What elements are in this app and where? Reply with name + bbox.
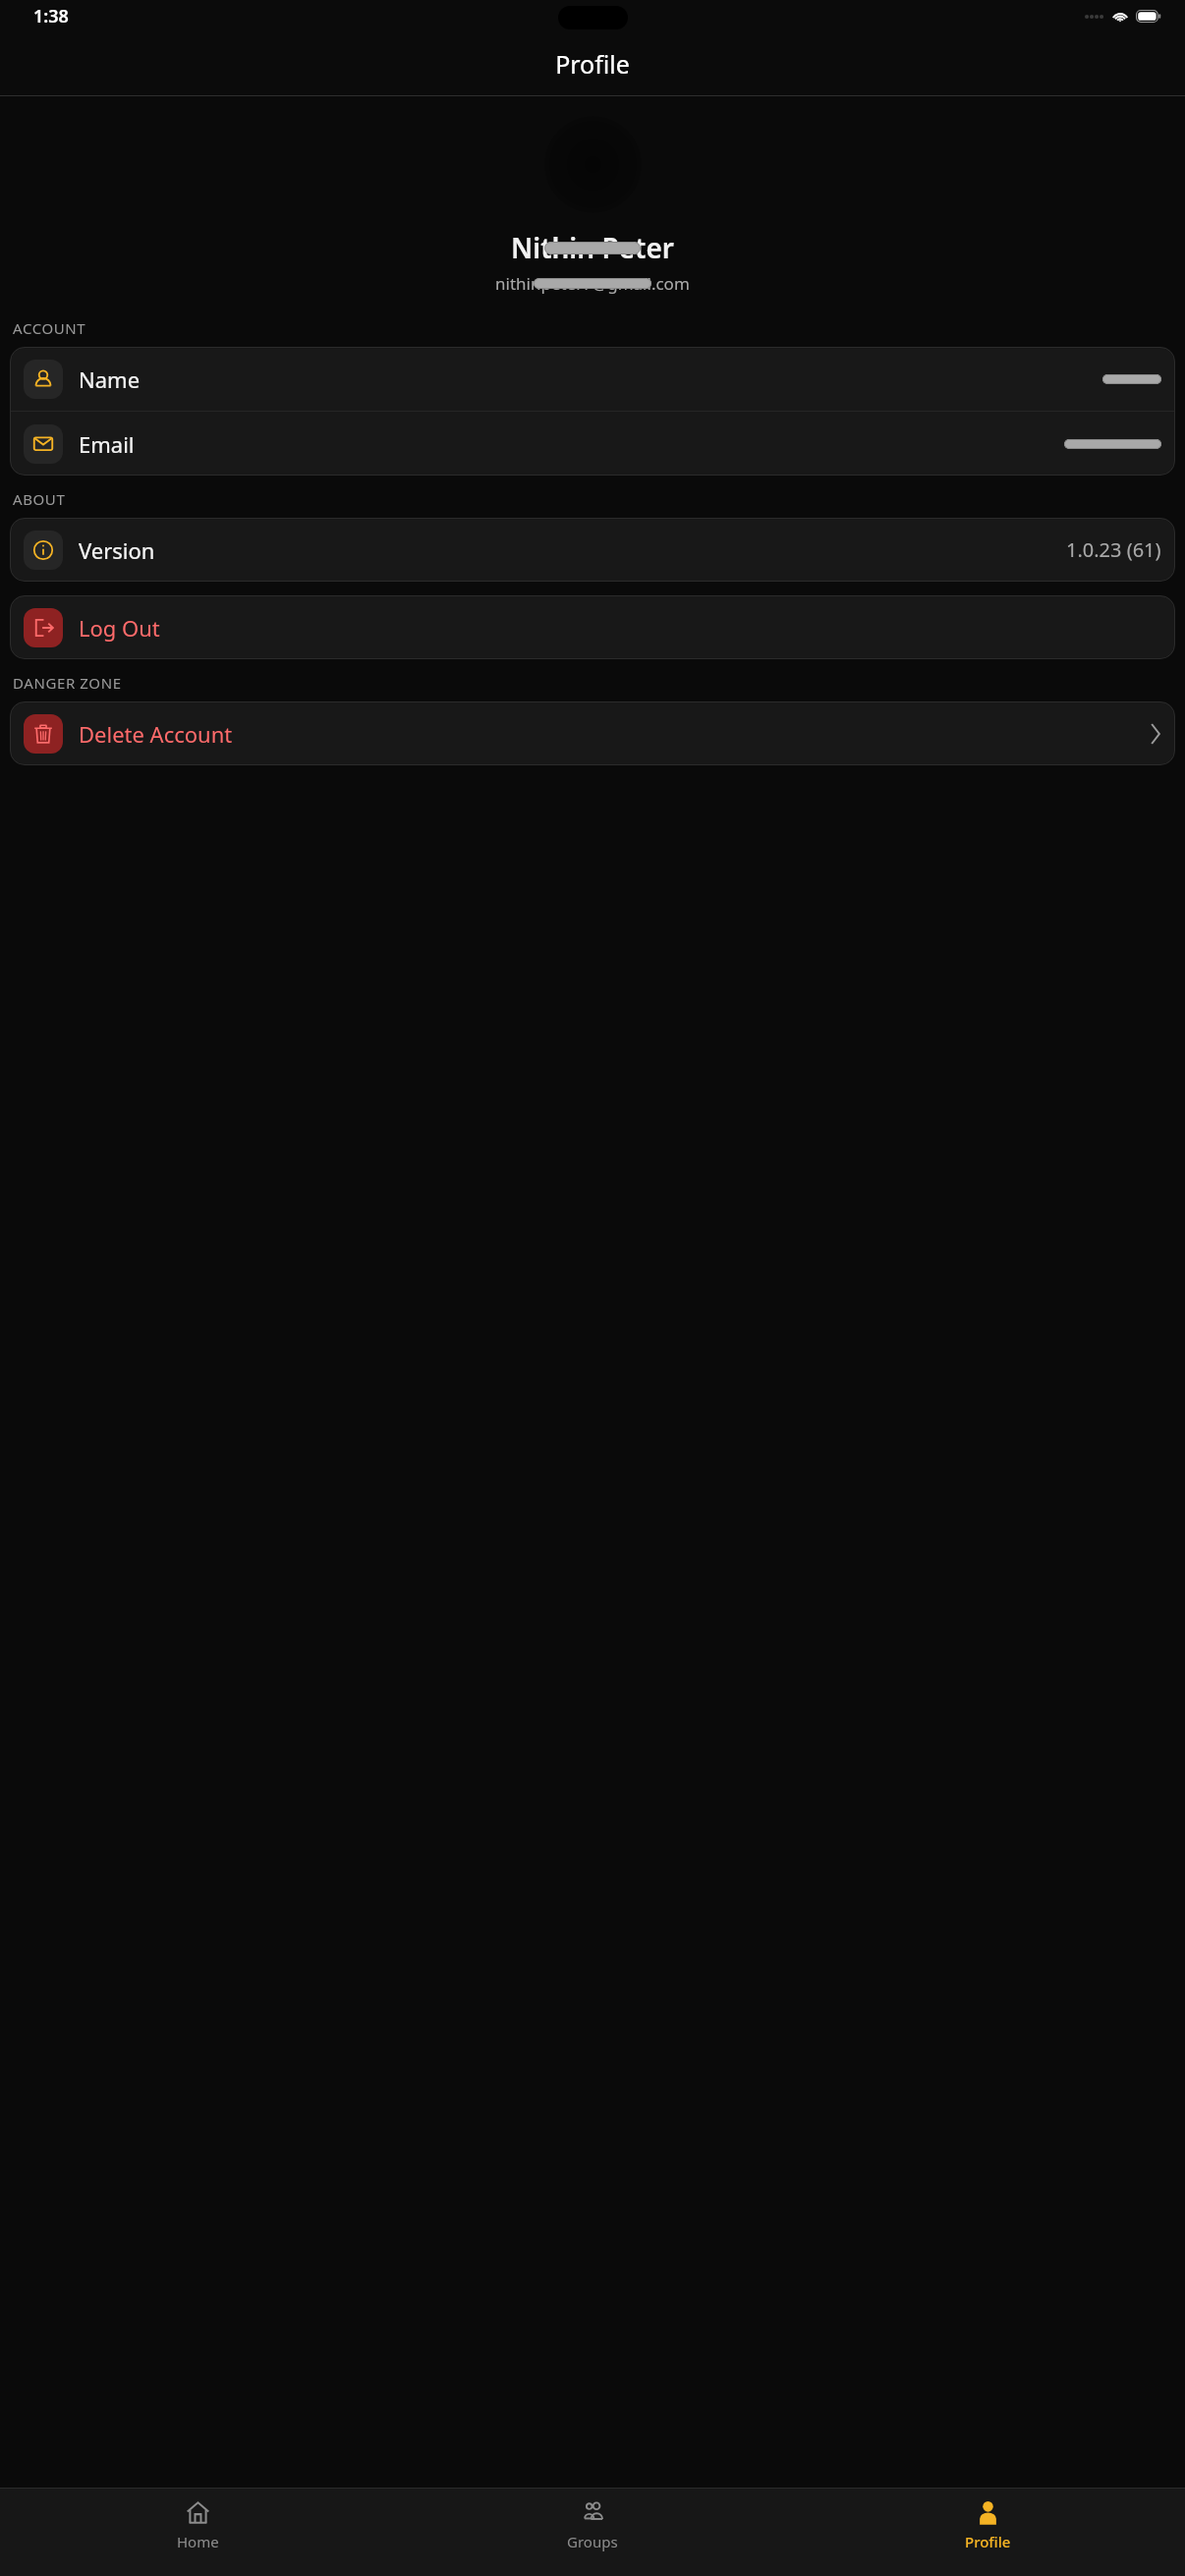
staticText: Profile: [555, 47, 630, 81]
staticText: Delete Account: [79, 719, 233, 749]
staticText: 1:38: [33, 4, 69, 28]
button[interactable]: Version: [10, 518, 1175, 582]
button[interactable]: Profile: [790, 2489, 1185, 2576]
button[interactable]: Delete Account: [10, 701, 1175, 765]
staticText: Groups: [567, 2532, 618, 2551]
staticText: 1.0.23 (61): [1066, 536, 1161, 563]
staticText: Nithin Peter: [511, 229, 674, 266]
button[interactable]: Groups: [395, 2489, 790, 2576]
staticText: nithinpeter7@gmail.com: [495, 272, 690, 295]
button[interactable]: Home: [0, 2489, 395, 2576]
staticText: Name: [79, 364, 141, 394]
staticText: ACCOUNT: [13, 318, 86, 338]
staticText: Profile: [965, 2532, 1011, 2551]
staticText: Version: [79, 535, 155, 565]
button[interactable]: Email: [10, 412, 1175, 476]
staticText: Home: [177, 2532, 219, 2551]
staticText: DANGER ZONE: [13, 673, 122, 693]
staticText: ABOUT: [13, 489, 66, 509]
staticText: Email: [79, 429, 135, 459]
button[interactable]: Log Out: [10, 595, 1175, 659]
staticText: Log Out: [79, 613, 160, 643]
button[interactable]: Name: [10, 347, 1175, 411]
